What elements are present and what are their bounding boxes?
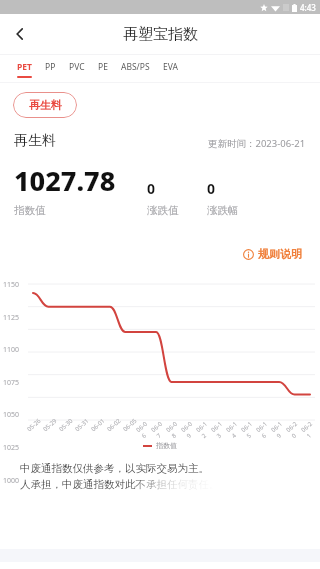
- staticText: 05-30: [57, 417, 75, 433]
- staticText: 更新时间：2023-06-21: [208, 137, 306, 150]
- staticText: 1027.78: [14, 162, 116, 199]
- staticText: 涨跌幅: [207, 204, 239, 217]
- staticText: 05-26: [25, 417, 43, 433]
- button[interactable]: Back: [0, 14, 40, 54]
- staticText: 1025: [3, 443, 20, 453]
- staticText: 06-14: [225, 418, 246, 440]
- staticText: 中废通指数仅供参考，以实际交易为主。: [20, 462, 209, 475]
- staticText: 指数值: [14, 204, 46, 217]
- staticText: 涨跌值: [147, 204, 179, 217]
- staticText: 4:43: [300, 2, 316, 13]
- staticText: 06-07: [150, 418, 171, 440]
- staticText: 06-02: [105, 417, 123, 433]
- staticText: 06-08: [165, 418, 186, 440]
- staticText: 06-20: [285, 418, 306, 440]
- button[interactable]: PET: [13, 55, 36, 78]
- button[interactable]: EVA: [159, 55, 182, 76]
- staticText: 再生料: [14, 132, 56, 150]
- staticText: 06-12: [195, 418, 216, 440]
- staticText: 再生料: [29, 98, 62, 112]
- staticText: 0: [147, 179, 156, 198]
- staticText: 1100: [3, 345, 20, 355]
- staticText: 06-19: [270, 418, 291, 440]
- staticText: 05-29: [41, 417, 59, 433]
- staticText: 06-15: [240, 418, 261, 440]
- staticText: PE: [98, 61, 108, 73]
- staticText: PVC: [69, 61, 85, 73]
- staticText: 06-21: [300, 418, 320, 440]
- staticText: 06-13: [210, 418, 231, 440]
- staticText: 05-31: [73, 417, 91, 433]
- staticText: 指数值: [156, 441, 177, 450]
- staticText: 1075: [3, 378, 20, 388]
- staticText: 06-05: [121, 417, 139, 433]
- staticText: 再塑宝指数: [123, 25, 198, 44]
- staticText: 06-06: [135, 418, 156, 440]
- staticText: 1000: [3, 476, 20, 486]
- staticText: 人承担，中废通指数对此不承担任何责任。: [20, 478, 220, 491]
- staticText: PP: [45, 61, 56, 73]
- staticText: 0: [207, 179, 216, 198]
- button[interactable]: PP: [41, 55, 60, 76]
- button[interactable]: 再生料: [13, 92, 77, 118]
- staticText: 1125: [3, 313, 20, 323]
- staticText: 06-16: [255, 418, 276, 440]
- staticText: EVA: [163, 61, 178, 73]
- staticText: 06-01: [89, 417, 107, 433]
- button[interactable]: ABS/PS: [117, 55, 154, 76]
- staticText: 1050: [3, 410, 20, 420]
- button[interactable]: PVC: [65, 55, 89, 76]
- button[interactable]: 规则说明: [239, 243, 306, 265]
- staticText: 1150: [3, 280, 20, 290]
- staticText: PET: [17, 61, 32, 73]
- staticText: 06-09: [180, 418, 201, 440]
- staticText: ABS/PS: [121, 61, 150, 73]
- button[interactable]: PE: [94, 55, 112, 76]
- staticText: 规则说明: [258, 247, 302, 261]
